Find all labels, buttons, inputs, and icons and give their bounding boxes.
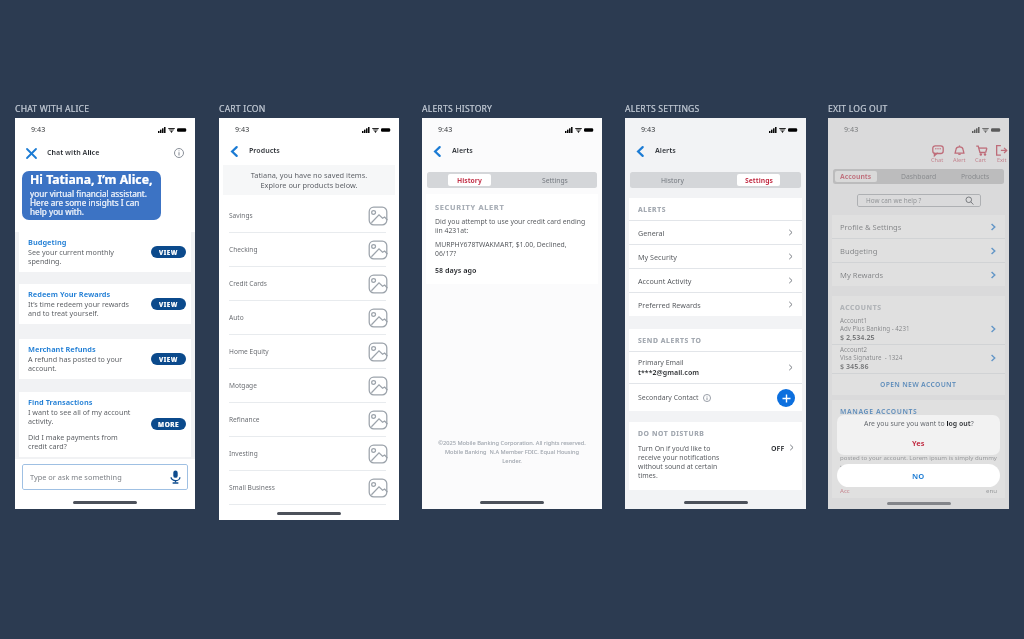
button[interactable]: History [632,174,713,186]
staticText: Products [249,146,280,156]
button[interactable]: Settings [514,174,595,186]
button[interactable]: History [448,174,491,186]
staticText: EXIT LOG OUT [828,103,888,115]
button[interactable]: Products [947,169,1004,184]
button[interactable]: VIEW [151,298,186,310]
staticText: Hi Tatiana, I’m Alice, [30,171,153,188]
staticText: 58 days ago [435,265,477,275]
button[interactable]: How can we help ? [857,194,981,207]
staticText: Budgeting [28,237,67,247]
button[interactable]: Budgeting [19,232,191,272]
staticText: Settings [745,176,773,185]
button[interactable]: Dashboard [890,169,947,184]
staticText: ALERTS SETTINGS [625,103,700,115]
staticText: Chat with Alice [47,148,100,158]
staticText: Type or ask me something [30,472,122,482]
staticText: ALERTS HISTORY [422,103,493,115]
staticText: enu [986,486,997,494]
staticText: MANAGE ACCOUNTS [840,407,918,416]
button[interactable]: Budgeting [832,239,1005,262]
staticText: My Rewards [840,270,884,280]
button[interactable]: Close [23,145,39,161]
staticText: It’s time redeem your rewards and to tre… [28,299,130,318]
staticText: Motgage [229,381,257,390]
staticText: Merchant Refunds [28,344,96,354]
button[interactable]: Credit Cards [219,267,399,300]
button[interactable]: My Security [629,245,802,268]
staticText: Alerts [655,146,676,156]
staticText: MORE [158,420,180,429]
button[interactable]: General [629,221,802,244]
button[interactable]: Settings [737,174,780,186]
button[interactable]: MORE [151,418,186,430]
staticText: SECURITY ALERT [435,202,505,212]
button[interactable]: Home Equity [219,335,399,368]
button[interactable]: Turn On if you’d like to receive your no… [629,444,802,480]
button[interactable]: Exit [995,145,1008,164]
staticText: VIEW [159,300,178,309]
button[interactable]: Back [227,144,241,158]
button[interactable]: Profile & Settings [832,215,1005,238]
staticText: General [638,228,665,238]
button[interactable]: Redeem Your Rewards [19,284,191,324]
staticText: Account Activity [638,276,692,286]
staticText: Are you sure you want to log out? [864,419,974,428]
button[interactable]: Account Activity [629,269,802,292]
button[interactable]: Account2 [832,345,1005,373]
staticText: Chat [931,156,944,164]
staticText: Redeem Your Rewards [28,289,111,299]
button[interactable]: Back [633,144,647,158]
button[interactable]: OPEN NEW ACCOUNT [832,374,1005,395]
staticText: OFF [771,444,785,454]
button[interactable]: Small Business [219,471,399,504]
staticText: See your current monthly spending. [28,247,114,266]
staticText: Investing [229,449,258,458]
button[interactable]: Information [172,146,186,160]
button[interactable]: Merchant Refunds [19,339,191,379]
button[interactable]: Primary Email [629,352,802,383]
button[interactable]: Refinance [219,403,399,436]
button[interactable]: NO [837,464,1000,487]
staticText: Alerts [452,146,473,156]
button[interactable]: Auto [219,301,399,334]
staticText: History [457,176,482,185]
button[interactable]: VIEW [151,353,186,365]
button[interactable]: Add secondary contact [777,389,795,407]
staticText: Auto [229,313,244,322]
staticText: 9:43 [641,124,656,134]
button[interactable]: Preferred Rewards [629,293,802,316]
staticText: Preferred Rewards [638,300,701,310]
button[interactable]: Yes [898,437,939,449]
button[interactable]: Investing [219,437,399,470]
staticText: Home Equity [229,347,269,356]
button[interactable]: VIEW [151,246,186,258]
staticText: Profile & Settings [840,222,902,232]
button[interactable]: Chat [930,145,945,164]
staticText: Budgeting [840,246,878,256]
staticText: Products [961,172,990,181]
button[interactable]: Find Transactions [19,392,191,457]
button[interactable]: Savings [219,199,399,232]
button[interactable]: Motgage [219,369,399,402]
staticText: Credit Cards [229,279,267,288]
staticText: your virtual financial assistant. Here a… [30,188,147,218]
button[interactable]: My Rewards [832,263,1005,286]
button[interactable]: Account1 [832,316,1005,344]
staticText: Primary Email [638,358,684,368]
staticText: ALERTS [638,205,667,214]
staticText: ACCOUNTS [840,303,882,312]
staticText: Savings [229,211,253,220]
staticText: Tatiana, you have no saved items. Explor… [223,170,395,190]
button[interactable]: Accounts [835,171,877,182]
button[interactable]: Cart [974,145,988,164]
staticText: Refinance [229,415,260,424]
button[interactable]: Checking [219,233,399,266]
staticText: OPEN NEW ACCOUNT [880,380,957,389]
button[interactable]: Back [430,144,444,158]
button[interactable]: Type or ask me something [22,464,188,490]
staticText: Cart [975,156,987,164]
button[interactable]: Alert [952,145,967,164]
staticText: CHAT WITH ALICE [15,103,90,115]
staticText: Account1 [840,316,868,324]
staticText: NO [912,471,925,481]
